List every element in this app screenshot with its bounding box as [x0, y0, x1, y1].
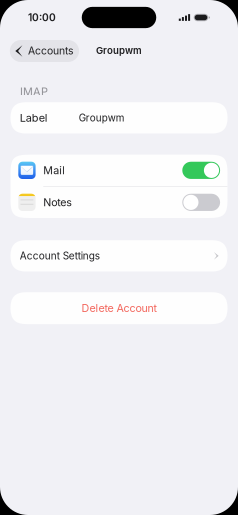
button[interactable]: Mail — [10, 155, 227, 186]
staticText: IMAP — [20, 85, 48, 98]
button[interactable]: Notes — [10, 187, 227, 218]
staticText: Notes — [43, 196, 72, 209]
button[interactable]: Account Settings — [10, 240, 227, 271]
staticText: Groupwm — [96, 45, 142, 56]
staticText: Label — [20, 111, 48, 124]
staticText: Delete Account — [81, 302, 156, 315]
staticText: Account Settings — [20, 250, 100, 262]
button[interactable]: Delete Account — [10, 292, 227, 324]
staticText: Groupwm — [79, 112, 125, 124]
staticText: Mail — [43, 164, 65, 177]
button[interactable]: Accounts — [10, 40, 79, 62]
staticText: 10:00 — [28, 11, 56, 24]
staticText: Accounts — [28, 44, 73, 57]
